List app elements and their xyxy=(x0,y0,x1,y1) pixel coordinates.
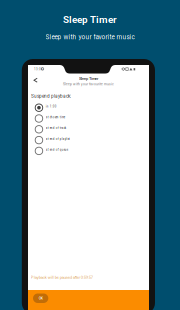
staticText: Suspend playback: xyxy=(31,93,71,99)
button[interactable]: at end of track xyxy=(31,124,143,135)
button[interactable]: in 1:00 xyxy=(31,102,143,113)
staticText: at end of playlist xyxy=(46,137,70,141)
staticText: at end of track xyxy=(46,126,66,130)
staticText: Playback will be paused after 0:59:57 xyxy=(31,275,93,280)
staticText: 13:06 xyxy=(34,68,43,71)
staticText: OK xyxy=(39,296,43,300)
button[interactable]: at end of queue xyxy=(31,145,143,156)
staticText: Sleep Timer xyxy=(79,76,98,81)
staticText: at end of queue xyxy=(46,148,68,151)
staticText: in 1:00 xyxy=(46,105,57,108)
button[interactable]: OK xyxy=(33,293,48,303)
staticText: Sleep Timer xyxy=(63,14,117,25)
staticText: Sleep with your favourite music xyxy=(63,82,114,86)
staticText: at chosen time xyxy=(46,116,65,119)
button[interactable]: at chosen time xyxy=(31,113,143,124)
button[interactable]: at end of playlist xyxy=(31,135,143,145)
staticText: Sleep with your favorite music xyxy=(45,33,134,41)
